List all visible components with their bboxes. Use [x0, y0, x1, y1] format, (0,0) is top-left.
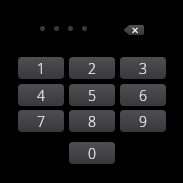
button[interactable]: Backspace [123, 25, 144, 35]
staticText: 4 [37, 86, 45, 105]
staticText: 7 [37, 112, 45, 131]
staticText: 1 [37, 59, 45, 78]
button[interactable]: 2 [69, 57, 115, 79]
button[interactable]: 0 [69, 142, 115, 164]
staticText: 3 [139, 59, 147, 78]
button[interactable]: 7 [18, 110, 64, 132]
staticText: 2 [88, 59, 96, 78]
button[interactable]: 8 [69, 110, 115, 132]
button[interactable]: 3 [120, 57, 166, 79]
staticText: 0 [88, 144, 96, 163]
staticText: 8 [88, 112, 96, 131]
staticText: 5 [88, 86, 96, 105]
button[interactable]: 6 [120, 84, 166, 106]
button[interactable]: 5 [69, 84, 115, 106]
staticText: 9 [139, 112, 147, 131]
button[interactable]: 4 [18, 84, 64, 106]
button[interactable]: 9 [120, 110, 166, 132]
staticText: 6 [139, 86, 147, 105]
button[interactable]: 1 [18, 57, 64, 79]
